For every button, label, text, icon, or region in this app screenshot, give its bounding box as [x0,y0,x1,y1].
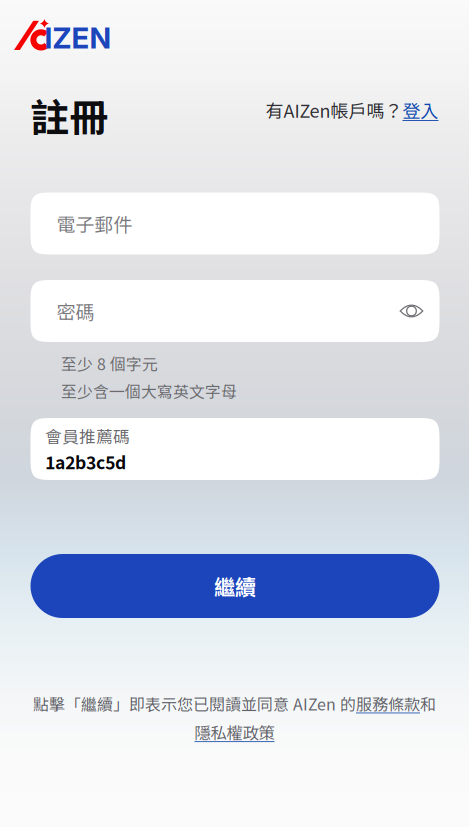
staticText: 會員推薦碼 [45,424,130,448]
button[interactable]: 有AIZen帳戶嗎？ [138,97,438,123]
button[interactable]: 服務條款 [356,692,420,715]
button[interactable]: 電子郵件 [30,192,439,254]
staticText: 有AIZen帳戶嗎？ [265,97,402,123]
staticText: 繼續 [214,571,256,601]
staticText: 至少含一個大寫英文字母 [61,379,237,402]
staticText: 點擊「繼續」即表示您已閱讀並同意 AIZen 的 [33,692,356,715]
staticText: 電子郵件 [56,210,132,237]
staticText: 登入 [402,97,438,123]
button[interactable]: 繼續 [30,554,439,618]
staticText: 服務條款 [356,692,420,715]
staticText: 註冊 [30,87,108,143]
staticText: 和 [420,692,436,715]
staticText: IZEN [44,20,111,56]
button[interactable]: 會員推薦碼 [30,418,439,480]
button[interactable]: 隱私權政策 [194,720,274,744]
staticText: 1a2b3c5d [45,449,126,474]
staticText: 密碼 [56,297,94,325]
staticText: 至少 8 個字元 [61,352,158,375]
button[interactable]: 密碼 [30,280,439,342]
staticText: 隱私權政策 [194,720,274,744]
